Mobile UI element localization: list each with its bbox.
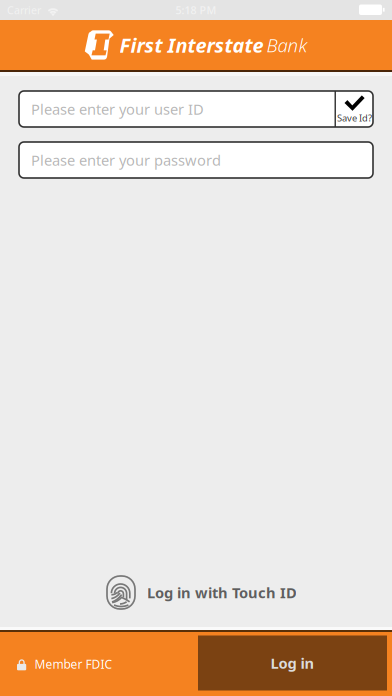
staticText: Please enter your user ID [31,99,204,119]
button[interactable]: Log in [198,636,387,691]
button[interactable]: Log in with Touch ID [101,571,291,614]
staticText: First Interstate [119,32,263,58]
button[interactable]: Member FDIC [0,635,112,693]
staticText: 5:18 PM [175,3,216,17]
button[interactable]: Please enter your password [19,142,373,178]
staticText: Please enter your password [31,150,221,170]
staticText: Log in with Touch ID [147,583,297,602]
staticText: Member FDIC [34,656,112,672]
button[interactable]: Please enter your user ID [19,91,334,127]
staticText: Carrier [7,3,41,17]
staticText: Log in [270,653,314,673]
button[interactable]: Save Id? [336,91,373,127]
staticText: Bank [266,33,307,57]
staticText: Save Id? [337,112,372,124]
